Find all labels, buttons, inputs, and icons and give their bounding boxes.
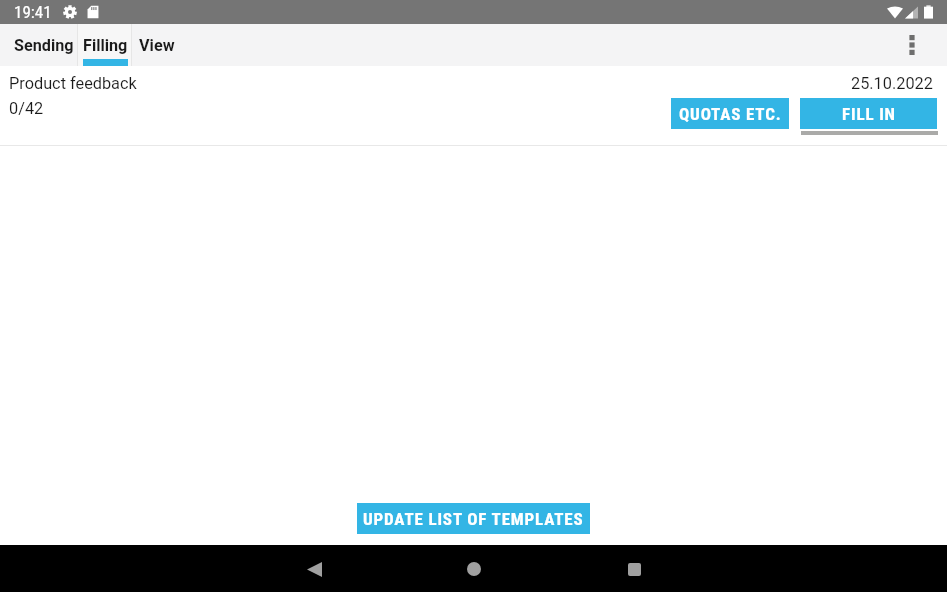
button[interactable]: Home — [454, 549, 494, 589]
staticText: Product feedback — [9, 74, 137, 93]
staticText: FILL IN — [842, 104, 896, 124]
button[interactable]: QUOTAS ETC. — [671, 98, 789, 129]
button[interactable]: FILL IN — [800, 98, 937, 129]
button[interactable]: Filling — [78, 24, 131, 66]
button[interactable]: UPDATE LIST OF TEMPLATES — [357, 503, 590, 534]
staticText: QUOTAS ETC. — [679, 104, 782, 124]
staticText: Sending — [14, 36, 74, 55]
button[interactable]: View — [132, 24, 185, 66]
button[interactable]: More options — [894, 27, 930, 63]
staticText: Filling — [83, 36, 128, 55]
staticText: 0/42 — [9, 99, 44, 118]
button[interactable]: Recent apps — [614, 549, 654, 589]
button[interactable]: Back — [294, 549, 334, 589]
staticText: 19:41 — [14, 2, 52, 22]
staticText: 25.10.2022 — [851, 74, 933, 93]
staticText: UPDATE LIST OF TEMPLATES — [363, 509, 584, 529]
staticText: View — [139, 36, 175, 55]
button[interactable]: Sending — [0, 24, 77, 66]
